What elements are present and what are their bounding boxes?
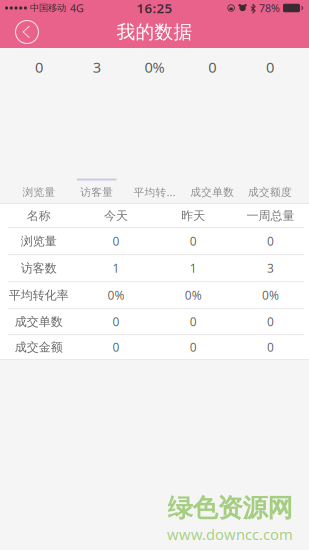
staticText: 成交额度 — [248, 185, 292, 199]
staticText: 0 — [190, 339, 197, 355]
button[interactable]: 浏览量 — [10, 178, 68, 203]
staticText: 成交金额 — [15, 340, 63, 354]
staticText: 0% — [262, 287, 279, 303]
staticText: 0 — [267, 233, 274, 249]
staticText: 浏览量 — [21, 234, 57, 248]
staticText: 78% — [259, 1, 280, 15]
staticText: 0% — [107, 287, 124, 303]
staticText: 0 — [266, 57, 274, 77]
staticText: 1 — [190, 260, 197, 276]
staticText: 一周总量 — [246, 208, 294, 223]
staticText: 成交单数 — [15, 314, 63, 329]
staticText: 0 — [267, 314, 274, 330]
staticText: 0% — [185, 287, 202, 303]
staticText: 今天 — [104, 208, 128, 223]
staticText: 4G — [70, 1, 84, 15]
staticText: 3 — [267, 260, 274, 276]
button[interactable]: 成交单数 — [183, 178, 241, 203]
staticText: 3 — [93, 57, 101, 77]
staticText: 名称 — [27, 208, 51, 223]
staticText: 我的数据 — [116, 20, 192, 43]
staticText: 昨天 — [181, 208, 205, 223]
staticText: 0 — [208, 57, 216, 77]
staticText: 16:25 — [136, 0, 172, 17]
staticText: 0 — [112, 314, 119, 330]
staticText: 0% — [144, 57, 164, 77]
button[interactable]: 成交额度 — [241, 178, 299, 203]
staticText: 平均转... — [133, 185, 175, 199]
staticText: www.downcc.com — [167, 524, 293, 544]
button[interactable]: Back — [4, 16, 50, 48]
staticText: 0 — [112, 339, 119, 355]
staticText: 成交单数 — [190, 185, 234, 199]
staticText: 0 — [190, 314, 197, 330]
staticText: 浏览量 — [22, 185, 55, 199]
staticText: 0 — [112, 233, 119, 249]
staticText: 访客数 — [21, 261, 57, 275]
button[interactable]: 访客量 — [68, 178, 126, 203]
staticText: 0 — [190, 233, 197, 249]
staticText: 平均转化率 — [9, 288, 69, 302]
staticText: 中国移动 — [30, 2, 66, 14]
staticText: 绿色资源网 — [167, 492, 292, 523]
staticText: 访客量 — [80, 185, 113, 199]
staticText: 0 — [267, 339, 274, 355]
button[interactable]: 平均转... — [126, 178, 183, 203]
staticText: 1 — [112, 260, 119, 276]
staticText: 0 — [35, 57, 43, 77]
